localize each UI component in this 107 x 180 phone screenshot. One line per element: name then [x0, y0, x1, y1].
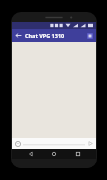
- button[interactable]: Back: [12, 29, 25, 42]
- button[interactable]: Insert emoji: [12, 138, 23, 149]
- button[interactable]: Home: [49, 149, 59, 159]
- button[interactable]: Options: [83, 29, 96, 42]
- button[interactable]: Chat VPG 1310: [25, 29, 83, 42]
- button[interactable]: Send: [85, 138, 96, 149]
- button[interactable]: Back: [26, 149, 36, 159]
- button[interactable]: Recent apps: [73, 149, 83, 159]
- button[interactable]: [23, 138, 85, 149]
- staticText: Chat VPG 1310: [25, 32, 65, 39]
